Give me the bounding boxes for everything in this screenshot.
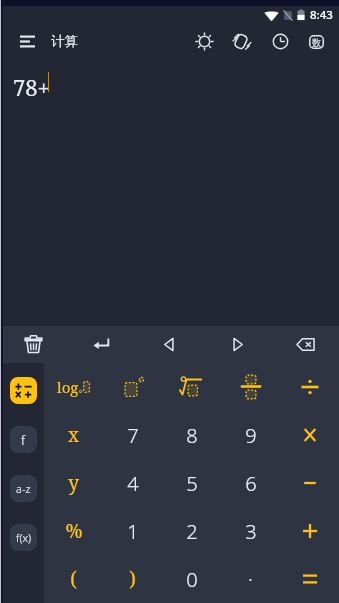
- button[interactable]: Backspace: [271, 326, 339, 363]
- button[interactable]: Square root: [162, 363, 221, 411]
- staticText: 0: [186, 566, 198, 593]
- button[interactable]: f(x): [10, 524, 37, 551]
- button[interactable]: x: [44, 411, 103, 459]
- staticText: 78+: [13, 72, 50, 102]
- button[interactable]: Fraction: [221, 363, 280, 411]
- staticText: 6: [245, 470, 257, 497]
- staticText: %: [65, 518, 83, 544]
- staticText: y: [68, 470, 79, 496]
- button[interactable]: y: [44, 459, 103, 507]
- button[interactable]: 7: [103, 411, 162, 459]
- button[interactable]: 4: [103, 459, 162, 507]
- button[interactable]: (: [44, 555, 103, 603]
- staticText: f(x): [16, 530, 32, 545]
- button[interactable]: 1: [103, 507, 162, 555]
- button[interactable]: Multiply: [280, 411, 339, 459]
- button[interactable]: 2: [162, 507, 221, 555]
- staticText: ): [129, 566, 136, 592]
- staticText: 9: [245, 422, 257, 449]
- staticText: 3: [245, 518, 257, 545]
- staticText: x: [68, 422, 79, 448]
- button[interactable]: Power: [103, 363, 162, 411]
- staticText: 2: [186, 518, 198, 545]
- button[interactable]: History: [262, 23, 298, 60]
- button[interactable]: Logarithm: [44, 363, 103, 411]
- staticText: 8: [186, 422, 198, 449]
- staticText: 8:43: [310, 7, 333, 23]
- staticText: 7: [127, 422, 139, 449]
- button[interactable]: ): [103, 555, 162, 603]
- button[interactable]: 9: [221, 411, 280, 459]
- button[interactable]: ·: [221, 555, 280, 603]
- button[interactable]: Clear: [0, 326, 67, 363]
- staticText: 数: [312, 37, 321, 48]
- button[interactable]: Minus: [280, 459, 339, 507]
- button[interactable]: Numeric mode: [298, 23, 334, 60]
- staticText: 5: [186, 470, 198, 497]
- staticText: 1: [127, 518, 139, 545]
- button[interactable]: Move right: [203, 326, 271, 363]
- button[interactable]: Menu: [10, 23, 44, 60]
- staticText: 4: [127, 470, 139, 497]
- button[interactable]: %: [44, 507, 103, 555]
- button[interactable]: f: [10, 426, 37, 453]
- button[interactable]: 3: [221, 507, 280, 555]
- staticText: ·: [248, 566, 253, 593]
- button[interactable]: Brightness: [186, 23, 222, 60]
- button[interactable]: Plus: [280, 507, 339, 555]
- button[interactable]: Move left: [135, 326, 203, 363]
- button[interactable]: Operators: [10, 377, 37, 404]
- staticText: 计算: [51, 33, 78, 50]
- staticText: a-z: [16, 481, 31, 496]
- button[interactable]: a-z: [10, 475, 37, 502]
- button[interactable]: Rotate screen: [222, 23, 258, 60]
- button[interactable]: Equals: [280, 555, 339, 603]
- staticText: log: [57, 377, 79, 397]
- button[interactable]: Enter: [67, 326, 135, 363]
- button[interactable]: Divide: [280, 363, 339, 411]
- button[interactable]: 0: [162, 555, 221, 603]
- button[interactable]: 5: [162, 459, 221, 507]
- button[interactable]: 6: [221, 459, 280, 507]
- staticText: (: [70, 566, 77, 592]
- button[interactable]: 8: [162, 411, 221, 459]
- staticText: f: [21, 431, 26, 449]
